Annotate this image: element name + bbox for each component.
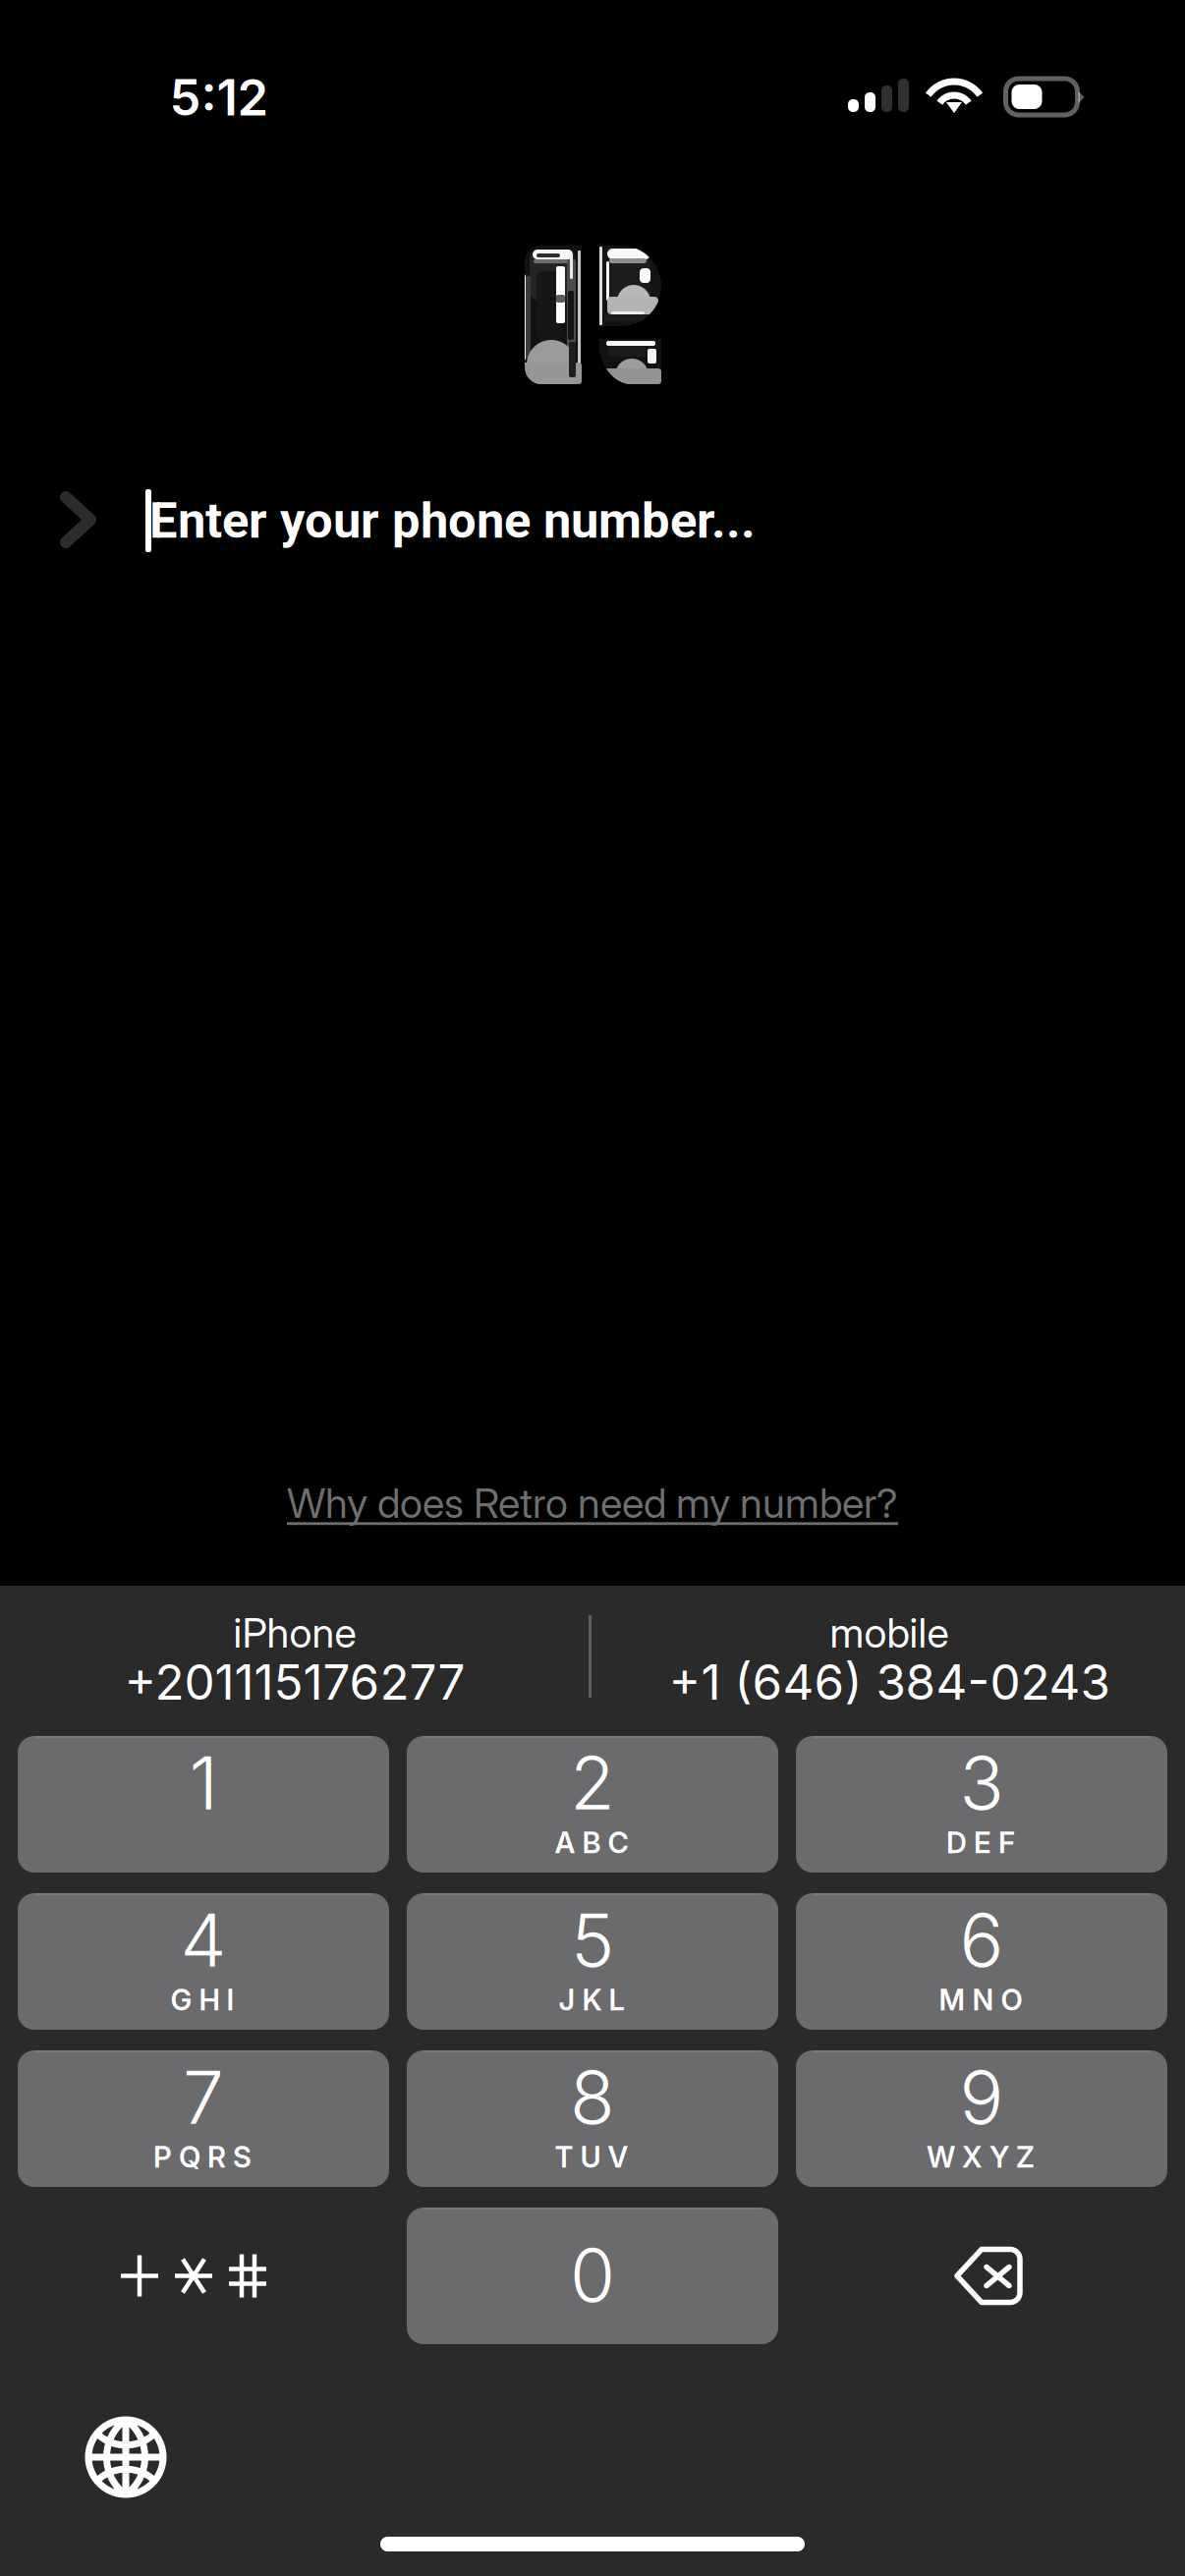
staticText: mobile xyxy=(830,1608,949,1657)
button[interactable]: Back xyxy=(30,473,125,567)
staticText: 9 xyxy=(959,2053,1004,2141)
button[interactable]: Enter your phone number... xyxy=(145,476,1128,565)
staticText: 7 xyxy=(183,2053,224,2141)
staticText: Why does Retro need my number? xyxy=(287,1479,898,1528)
button[interactable]: mobile xyxy=(614,1615,1164,1713)
staticText: 6 xyxy=(959,1895,1004,1984)
staticText: MNO xyxy=(939,1982,1022,2017)
staticText: +1 (646) 384-0243 xyxy=(669,1653,1110,1711)
staticText: DEF xyxy=(946,1825,1015,1860)
staticText: WXYZ xyxy=(927,2140,1035,2174)
staticText: iPhone xyxy=(233,1608,356,1657)
staticText: ABC xyxy=(555,1825,628,1860)
button[interactable]: 7 xyxy=(18,2050,389,2187)
staticText: 1 xyxy=(189,1738,218,1827)
button[interactable]: 1 xyxy=(18,1736,389,1873)
button[interactable]: Delete xyxy=(796,2208,1167,2344)
staticText: 5 xyxy=(571,1895,614,1984)
staticText: 4 xyxy=(180,1895,226,1984)
button[interactable]: 9 xyxy=(796,2050,1167,2187)
button[interactable]: 0 xyxy=(407,2208,778,2344)
button[interactable]: 2 xyxy=(407,1736,778,1873)
button[interactable]: 4 xyxy=(18,1893,389,2030)
staticText: PQRS xyxy=(153,2140,252,2174)
staticText: JKL xyxy=(559,1982,624,2017)
staticText: TUV xyxy=(555,2140,628,2174)
staticText: 5:12 xyxy=(169,67,269,127)
staticText: 3 xyxy=(959,1738,1004,1827)
button[interactable]: Why does Retro need my number? xyxy=(0,1473,1185,1534)
button[interactable]: 3 xyxy=(796,1736,1167,1873)
staticText: 2 xyxy=(570,1738,615,1827)
button[interactable]: Change keyboard language xyxy=(65,2396,187,2518)
button[interactable]: iPhone xyxy=(20,1615,570,1713)
staticText: GHI xyxy=(170,1982,234,2017)
staticText: Enter your phone number... xyxy=(149,492,756,550)
staticText: +201115176277 xyxy=(124,1653,465,1711)
staticText: 0 xyxy=(570,2230,615,2319)
staticText: 8 xyxy=(570,2053,615,2141)
button[interactable]: Plus, star, hash xyxy=(18,2208,389,2344)
button[interactable]: 8 xyxy=(407,2050,778,2187)
button[interactable]: 5 xyxy=(407,1893,778,2030)
button[interactable]: 6 xyxy=(796,1893,1167,2030)
